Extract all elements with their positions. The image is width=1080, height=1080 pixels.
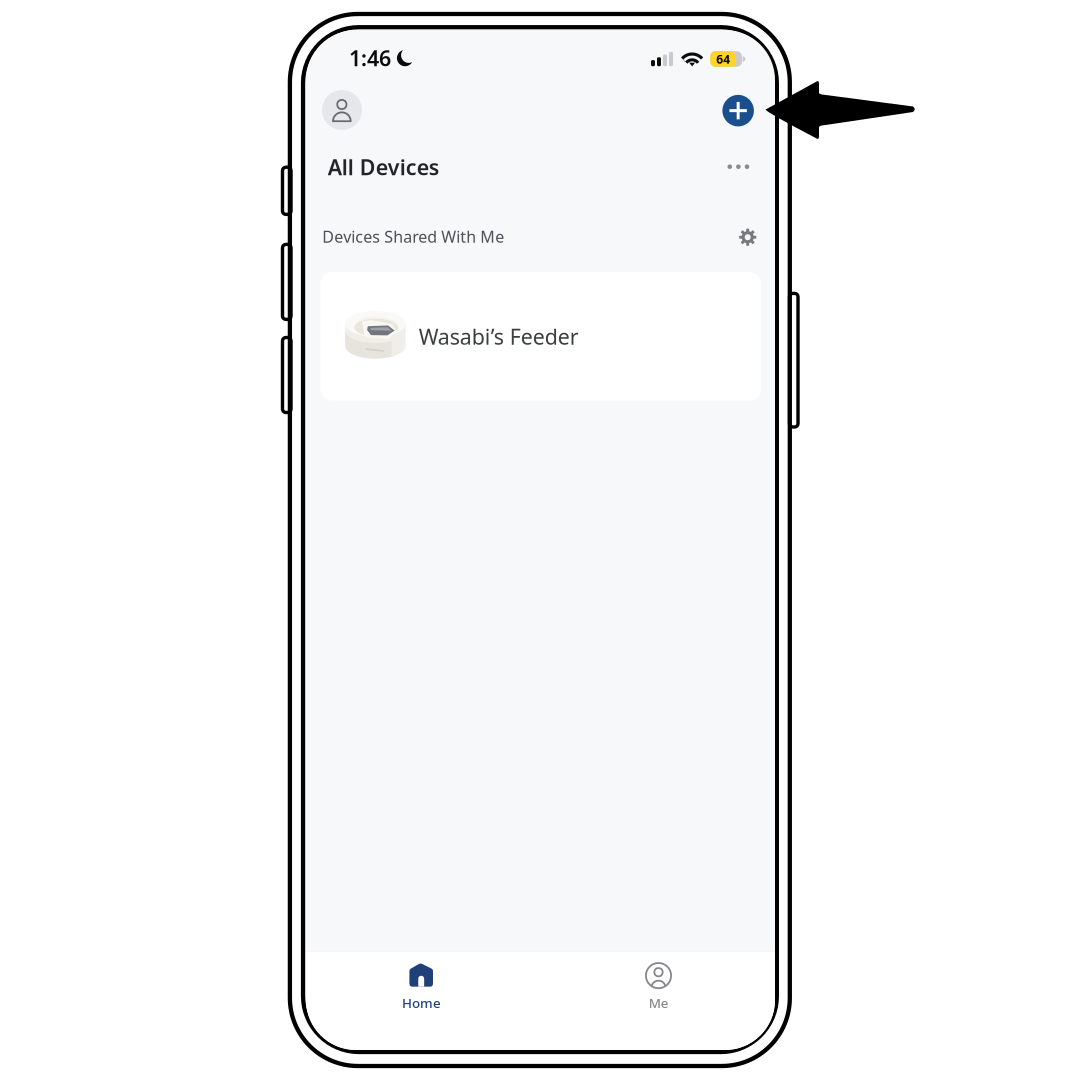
button[interactable]: Me — [601, 951, 717, 1050]
button[interactable]: Add device — [722, 95, 754, 126]
button[interactable]: Wasabi’s Feeder — [320, 272, 761, 401]
staticText: 64 — [716, 51, 730, 67]
staticText: All Devices — [328, 153, 440, 181]
staticText: Me — [649, 994, 669, 1012]
staticText: 1:46 — [349, 44, 391, 72]
staticText: Home — [402, 994, 441, 1012]
button[interactable]: Shared device settings — [732, 221, 764, 253]
button[interactable]: More options — [720, 151, 756, 183]
button[interactable]: Profile — [322, 90, 362, 130]
staticText: Devices Shared With Me — [322, 226, 504, 247]
staticText: Wasabi’s Feeder — [419, 322, 579, 350]
button[interactable]: Home — [363, 951, 479, 1050]
